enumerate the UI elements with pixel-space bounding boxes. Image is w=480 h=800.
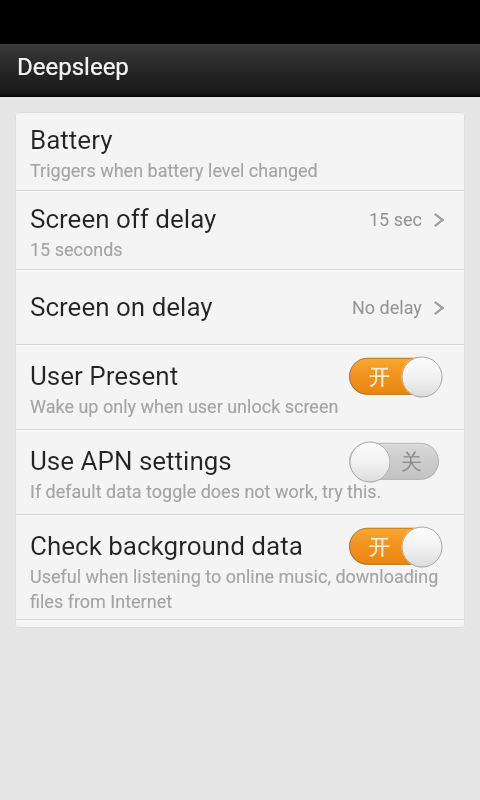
- staticText: Use APN settings: [30, 446, 232, 476]
- staticText: Screen on delay: [30, 292, 213, 322]
- staticText: No delay: [352, 297, 422, 318]
- staticText: 开: [369, 534, 390, 560]
- staticText: Battery: [30, 125, 113, 155]
- staticText: 开: [369, 364, 390, 390]
- staticText: If default data toggle does not work, tr…: [30, 481, 382, 502]
- button[interactable]: Battery: [15, 114, 465, 190]
- button[interactable]: Use APN settings: [15, 431, 465, 514]
- staticText: Deepsleep: [17, 53, 129, 81]
- button[interactable]: Check background data: [15, 516, 465, 619]
- button[interactable]: Switch off: [349, 439, 443, 483]
- button[interactable]: User Present: [15, 346, 465, 429]
- staticText: 关: [401, 449, 422, 475]
- staticText: 15 seconds: [30, 239, 123, 260]
- staticText: 15 sec: [369, 209, 422, 230]
- button[interactable]: Screen off delay: [15, 192, 465, 269]
- staticText: Useful when listening to online music, d…: [30, 566, 451, 612]
- button[interactable]: Screen on delay: [15, 271, 465, 344]
- staticText: Check background data: [30, 531, 303, 561]
- staticText: Wake up only when user unlock screen: [30, 396, 339, 417]
- button[interactable]: Switch on: [349, 524, 443, 568]
- staticText: Triggers when battery level changed: [30, 160, 318, 181]
- button[interactable]: Switch on: [349, 354, 443, 398]
- staticText: User Present: [30, 361, 179, 391]
- staticText: Screen off delay: [30, 204, 217, 234]
